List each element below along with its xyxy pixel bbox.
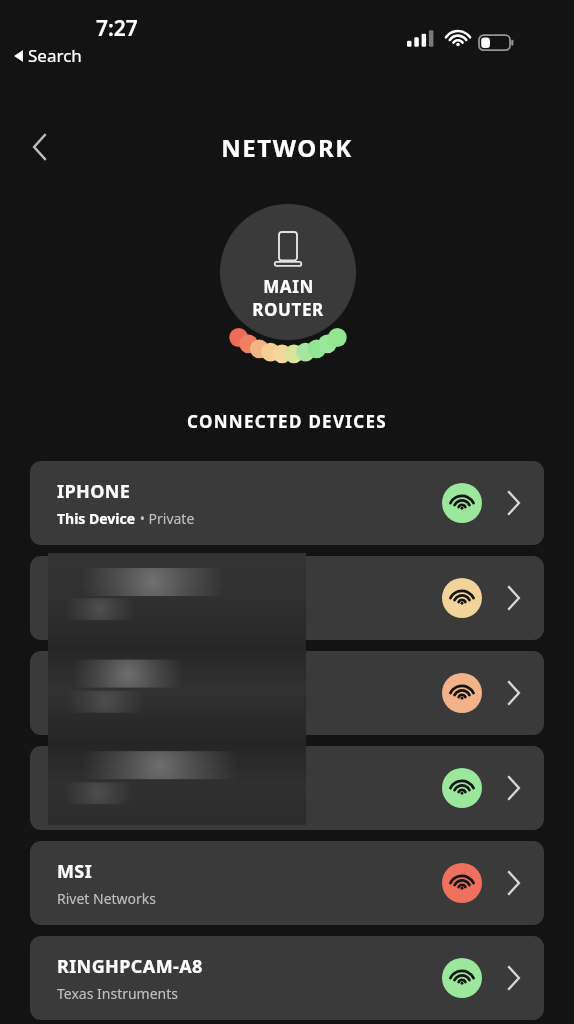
staticText: ROUTER: [252, 298, 324, 321]
staticText: IPHONE: [57, 479, 131, 504]
staticText: Texas Instruments: [57, 984, 179, 1003]
staticText: Vendor: [57, 794, 105, 813]
button[interactable]: RINGHPCAM-A8: [30, 936, 544, 1020]
staticText: DEVICE THREE NAME: [57, 764, 248, 789]
button[interactable]: Open IPHONE details: [496, 486, 530, 520]
staticText: RINGHPCAM-A8: [57, 954, 203, 979]
button[interactable]: Open RINGHPCAM-A8 details: [496, 961, 530, 995]
button[interactable]: Open DEVICE NAME HERE details: [496, 581, 530, 615]
staticText: Search: [28, 44, 82, 67]
staticText: 7:27: [96, 14, 138, 43]
button[interactable]: MAIN: [220, 204, 356, 340]
button[interactable]: Open MSI details: [496, 866, 530, 900]
button[interactable]: IPHONE: [30, 461, 544, 545]
staticText: Manufacturer: [57, 604, 148, 623]
button[interactable]: Open DEVICE THREE NAME details: [496, 771, 530, 805]
button[interactable]: DEVICE TWO: [30, 651, 544, 735]
staticText: MSI: [57, 859, 93, 884]
staticText: DEVICE TWO: [57, 669, 172, 694]
staticText: • Private: [136, 509, 195, 528]
button[interactable]: DEVICE NAME HERE: [30, 556, 544, 640]
staticText: Maker: [57, 699, 99, 718]
staticText: MAIN: [263, 275, 314, 298]
button[interactable]: DEVICE THREE NAME: [30, 746, 544, 830]
button[interactable]: MSI: [30, 841, 544, 925]
staticText: Rivet Networks: [57, 889, 157, 908]
staticText: DEVICE NAME HERE: [57, 574, 237, 599]
staticText: This Device: [57, 509, 136, 528]
button[interactable]: Open DEVICE TWO details: [496, 676, 530, 710]
button[interactable]: Back: [18, 125, 62, 169]
staticText: NETWORK: [221, 131, 353, 164]
staticText: CONNECTED DEVICES: [187, 410, 387, 433]
